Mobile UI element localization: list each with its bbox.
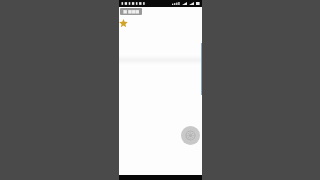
- staticText: ■ ■■■: [123, 9, 140, 14]
- button[interactable]: ■ ■■■: [120, 8, 142, 15]
- button[interactable]: Favorite: [117, 17, 129, 29]
- button[interactable]: Action: [181, 126, 200, 145]
